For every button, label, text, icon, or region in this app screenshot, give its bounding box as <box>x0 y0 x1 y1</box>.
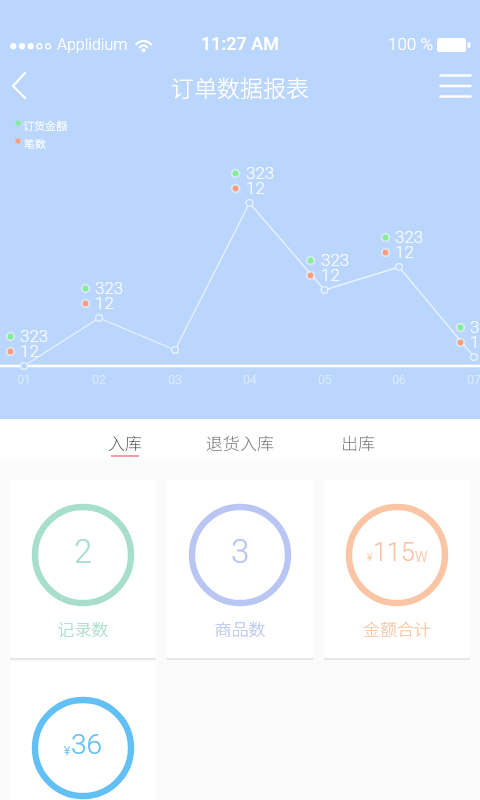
staticText: 323 <box>20 326 49 346</box>
staticText: 06 <box>387 373 411 387</box>
staticText: 商品数 <box>167 616 313 641</box>
staticText: 323 <box>321 250 350 270</box>
staticText: 100 % <box>388 34 433 54</box>
staticText: 05 <box>313 373 337 387</box>
staticText: 入库 <box>108 430 142 455</box>
staticText: 3 <box>231 532 250 571</box>
staticText: 02 <box>87 373 111 387</box>
staticText: 11:27 AM <box>0 33 480 54</box>
staticText: 12 <box>395 242 414 262</box>
staticText: 记录数 <box>10 616 156 641</box>
staticText: 03 <box>163 373 187 387</box>
staticText: 笔数 <box>24 135 46 151</box>
staticText: 323 <box>470 317 480 337</box>
staticText: 12 <box>20 341 39 361</box>
button[interactable]: ¥ <box>10 662 156 800</box>
staticText: 金额合计 <box>324 616 470 641</box>
staticText: 323 <box>246 163 275 183</box>
staticText: 07 <box>462 373 480 387</box>
staticText: 12 <box>470 332 480 352</box>
staticText: ¥ <box>367 551 373 564</box>
staticText: 订单数据报表 <box>0 70 480 103</box>
staticText: ¥ <box>64 744 71 758</box>
staticText: 出库 <box>341 430 375 455</box>
staticText: 04 <box>238 373 262 387</box>
staticText: 2 <box>74 532 93 571</box>
staticText: 323 <box>395 227 424 247</box>
staticText: Applidium <box>57 35 128 54</box>
staticText: 36 <box>71 728 103 761</box>
staticText: 12 <box>321 265 340 285</box>
staticText: 退货入库 <box>206 430 274 455</box>
staticText: 订货金额 <box>23 117 67 133</box>
button[interactable]: 2 <box>10 480 156 658</box>
staticText: 12 <box>95 293 114 313</box>
button[interactable]: Menu <box>428 62 480 110</box>
button[interactable]: Back <box>0 62 48 110</box>
staticText: W <box>415 549 428 565</box>
staticText: 323 <box>95 278 124 298</box>
button[interactable]: 退货入库 <box>195 419 285 459</box>
button[interactable]: 3 <box>167 480 313 658</box>
button[interactable]: 入库 <box>80 419 170 459</box>
staticText: 12 <box>246 178 265 198</box>
button[interactable]: ¥ <box>324 480 470 658</box>
button[interactable]: 出库 <box>313 419 403 459</box>
staticText: 115 <box>373 538 415 567</box>
staticText: 01 <box>12 373 36 387</box>
